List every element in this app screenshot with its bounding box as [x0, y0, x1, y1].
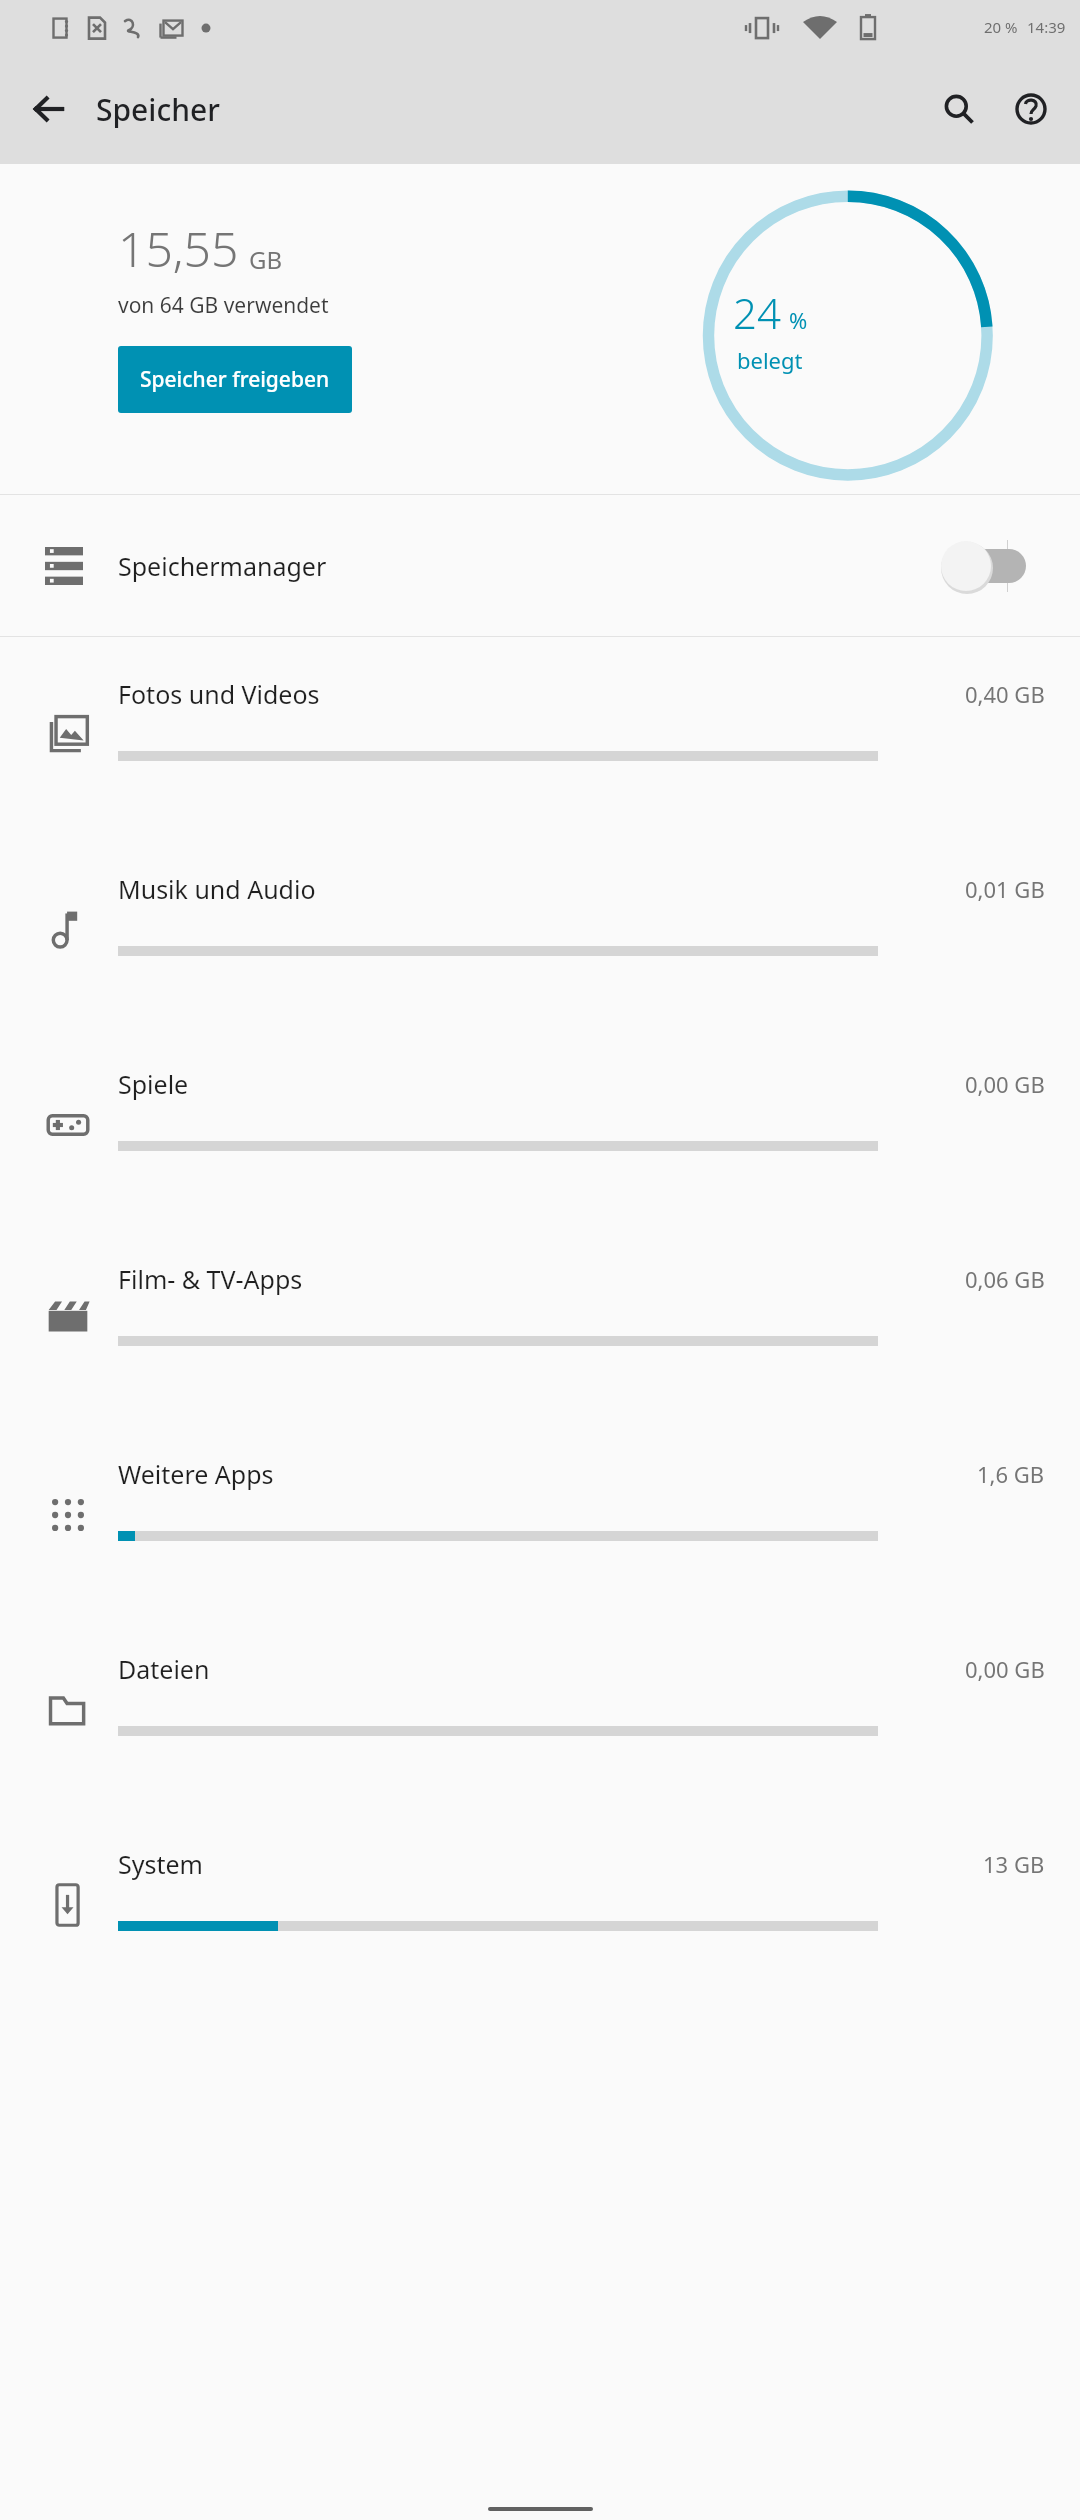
button[interactable]: Hilfe [1000, 78, 1062, 140]
staticText: Speichermanager [118, 549, 327, 583]
button[interactable]: Speichermanager [0, 495, 1080, 636]
button[interactable]: Speichermanager ein-/ausschalten [922, 526, 1032, 606]
staticText: System [118, 1847, 203, 1881]
staticText: Speicher freigeben [140, 365, 330, 394]
staticText: 0,00 GB [965, 1069, 1045, 1099]
staticText: 14:39 [1027, 17, 1066, 37]
staticText: Film- & TV-Apps [118, 1262, 303, 1296]
staticText: Dateien [118, 1652, 210, 1686]
staticText: GB [249, 243, 283, 276]
staticText: Fotos und Videos [118, 677, 320, 711]
staticText: von 64 GB verwendet [118, 291, 329, 320]
button[interactable]: Musik und Audio [0, 832, 1080, 1027]
staticText: 15,55 [118, 216, 239, 281]
staticText: Weitere Apps [118, 1457, 274, 1491]
staticText: % [789, 305, 808, 335]
button[interactable]: Spiele [0, 1027, 1080, 1222]
button[interactable]: Fotos und Videos [0, 637, 1080, 832]
staticText: 24 [733, 284, 781, 341]
staticText: belegt [737, 345, 803, 375]
staticText: 0,40 GB [965, 679, 1045, 709]
staticText: 20 % [984, 17, 1018, 37]
button[interactable]: Zurück [22, 81, 78, 137]
staticText: Spiele [118, 1067, 189, 1101]
staticText: Musik und Audio [118, 872, 316, 906]
staticText: 0,01 GB [965, 874, 1045, 904]
staticText: Speicher [96, 89, 220, 130]
button[interactable]: Suchen [928, 78, 990, 140]
button[interactable]: Speicher freigeben [118, 346, 352, 413]
button[interactable]: Dateien [0, 1612, 1080, 1807]
staticText: 0,06 GB [965, 1264, 1045, 1294]
button[interactable]: Weitere Apps [0, 1417, 1080, 1612]
staticText: 1,6 GB [977, 1459, 1045, 1489]
staticText: 0,00 GB [965, 1654, 1045, 1684]
staticText: 13 GB [983, 1849, 1045, 1879]
button[interactable]: System [0, 1807, 1080, 2002]
button[interactable]: Film- & TV-Apps [0, 1222, 1080, 1417]
